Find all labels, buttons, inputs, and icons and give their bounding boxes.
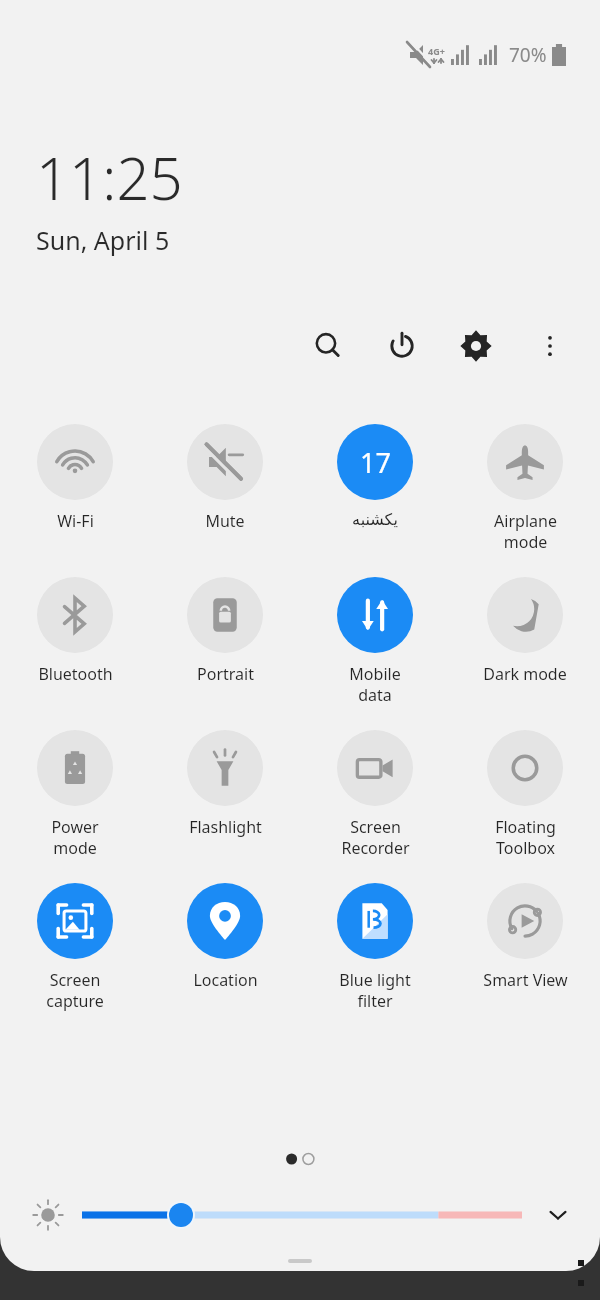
staticText: Power mode [51,816,99,859]
button[interactable]: Screen capture [9,883,141,1012]
staticText: Sun, April 5 [36,223,170,257]
button[interactable]: Location [159,883,291,991]
staticText: 11:25 [36,138,183,217]
staticText: Flashlight [189,816,262,838]
button[interactable]: Power [378,322,426,370]
staticText: Mobile data [349,663,401,706]
button[interactable]: Floating Toolbox [459,730,591,859]
button[interactable]: Smart View [459,883,591,991]
staticText: Floating Toolbox [495,816,556,859]
button[interactable]: More options [526,322,574,370]
button[interactable]: Mobile data [309,577,441,706]
staticText: Wi-Fi [57,510,94,532]
staticText: 17 [360,444,391,481]
staticText: Smart View [483,969,568,991]
staticText: 4G+ [428,45,445,57]
button[interactable]: Portrait [159,577,291,685]
button[interactable]: 17 [309,424,441,529]
staticText: 70% [509,42,547,68]
staticText: یکشنبه [352,510,398,529]
button[interactable]: Wi-Fi [9,424,141,532]
staticText: Blue light filter [339,969,411,1012]
staticText: Airplane mode [494,510,557,553]
staticText: Dark mode [483,663,567,685]
button[interactable]: Dark mode [459,577,591,685]
staticText: Screen capture [46,969,104,1012]
staticText: Location [193,969,258,991]
button[interactable]: Expand brightness settings [536,1193,580,1237]
button[interactable]: Search [304,322,352,370]
button[interactable]: Mute [159,424,291,532]
staticText: Mute [205,510,245,532]
button[interactable]: Screen Recorder [309,730,441,859]
staticText: Portrait [197,663,254,685]
button[interactable]: Settings [452,322,500,370]
button[interactable]: Airplane mode [459,424,591,553]
button[interactable]: Flashlight [159,730,291,838]
staticText: Bluetooth [38,663,113,685]
staticText: Screen Recorder [341,816,410,859]
button[interactable]: Bluetooth [9,577,141,685]
button[interactable]: Blue light filter [309,883,441,1012]
button[interactable]: Power mode [9,730,141,859]
